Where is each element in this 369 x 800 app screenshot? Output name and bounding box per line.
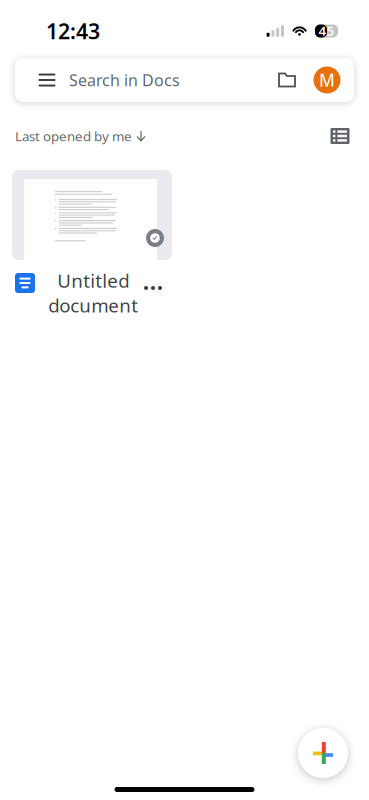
staticText: 12:43 xyxy=(46,17,100,45)
staticText: M xyxy=(319,68,335,91)
button[interactable]: Menu xyxy=(25,58,69,102)
staticText: Last opened by me xyxy=(15,127,132,145)
button[interactable]: Switch to list view xyxy=(324,121,356,151)
staticText: Untitled document xyxy=(48,268,138,318)
staticText: Search in Docs xyxy=(69,69,180,91)
staticText: 45 xyxy=(318,22,334,39)
button[interactable]: Account xyxy=(305,58,349,102)
button[interactable]: More options xyxy=(140,274,166,302)
button[interactable]: Folders xyxy=(269,58,305,102)
button[interactable]: Create new document xyxy=(298,728,348,778)
button[interactable]: Last opened by me xyxy=(15,121,146,151)
